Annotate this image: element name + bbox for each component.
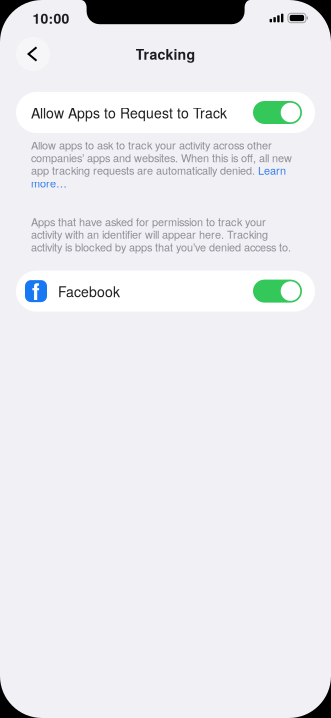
button[interactable]: f: [16, 271, 315, 312]
staticText: Apps that have asked for permission to t…: [31, 214, 291, 255]
staticText: Facebook: [58, 281, 120, 301]
staticText: f: [32, 275, 40, 307]
staticText: Tracking: [135, 44, 195, 64]
staticText: 10:00: [32, 8, 69, 28]
button[interactable]: Allow Apps to Request to Track: [16, 92, 315, 133]
staticText: Allow apps to ask to track your activity…: [31, 137, 292, 191]
staticText: Allow Apps to Request to Track: [31, 102, 227, 122]
button[interactable]: Back: [16, 37, 50, 71]
